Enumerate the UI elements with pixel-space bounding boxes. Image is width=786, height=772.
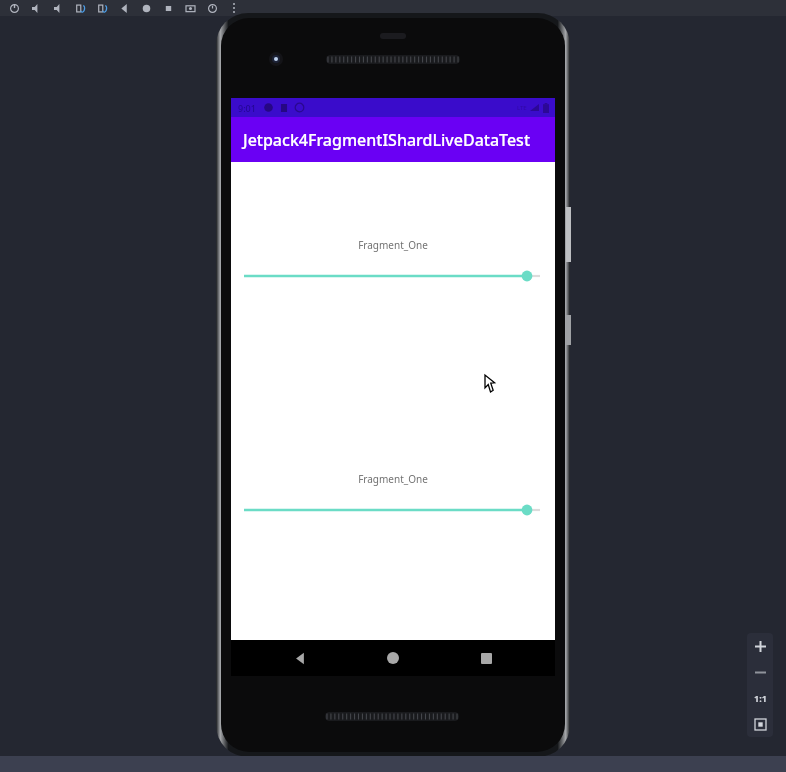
button[interactable]: Overview xyxy=(157,0,179,16)
button[interactable]: Volume down xyxy=(47,0,69,16)
button[interactable]: Jetpack4FragmentIShardLiveDataTest xyxy=(231,117,555,162)
staticText: 1:1 xyxy=(754,692,767,704)
button[interactable]: Power xyxy=(3,0,25,16)
button[interactable]: More options xyxy=(227,0,241,16)
staticText: LTE xyxy=(517,104,527,112)
button[interactable]: Record xyxy=(201,0,223,16)
staticText: Fragment_One xyxy=(231,472,555,486)
button[interactable]: Home xyxy=(369,640,417,676)
button[interactable]: Screenshot xyxy=(179,0,201,16)
staticText: 9:01 xyxy=(238,102,256,114)
button[interactable]: Actual size xyxy=(747,685,773,711)
button[interactable]: Volume up xyxy=(25,0,47,16)
button[interactable]: Zoom out xyxy=(747,659,773,685)
button[interactable]: Fit to screen xyxy=(747,711,773,737)
button[interactable] xyxy=(231,266,555,286)
button[interactable]: Navigate back xyxy=(113,0,135,16)
staticText: Fragment_One xyxy=(231,238,555,252)
button[interactable]: Recent apps xyxy=(462,640,510,676)
button[interactable]: Navigate home xyxy=(135,0,157,16)
button[interactable]: Rotate left xyxy=(69,0,91,16)
button[interactable] xyxy=(231,500,555,520)
staticText: Jetpack4FragmentIShardLiveDataTest xyxy=(243,129,531,151)
button[interactable]: Back xyxy=(276,640,324,676)
button[interactable]: Zoom in xyxy=(747,633,773,659)
button[interactable]: Rotate right xyxy=(91,0,113,16)
